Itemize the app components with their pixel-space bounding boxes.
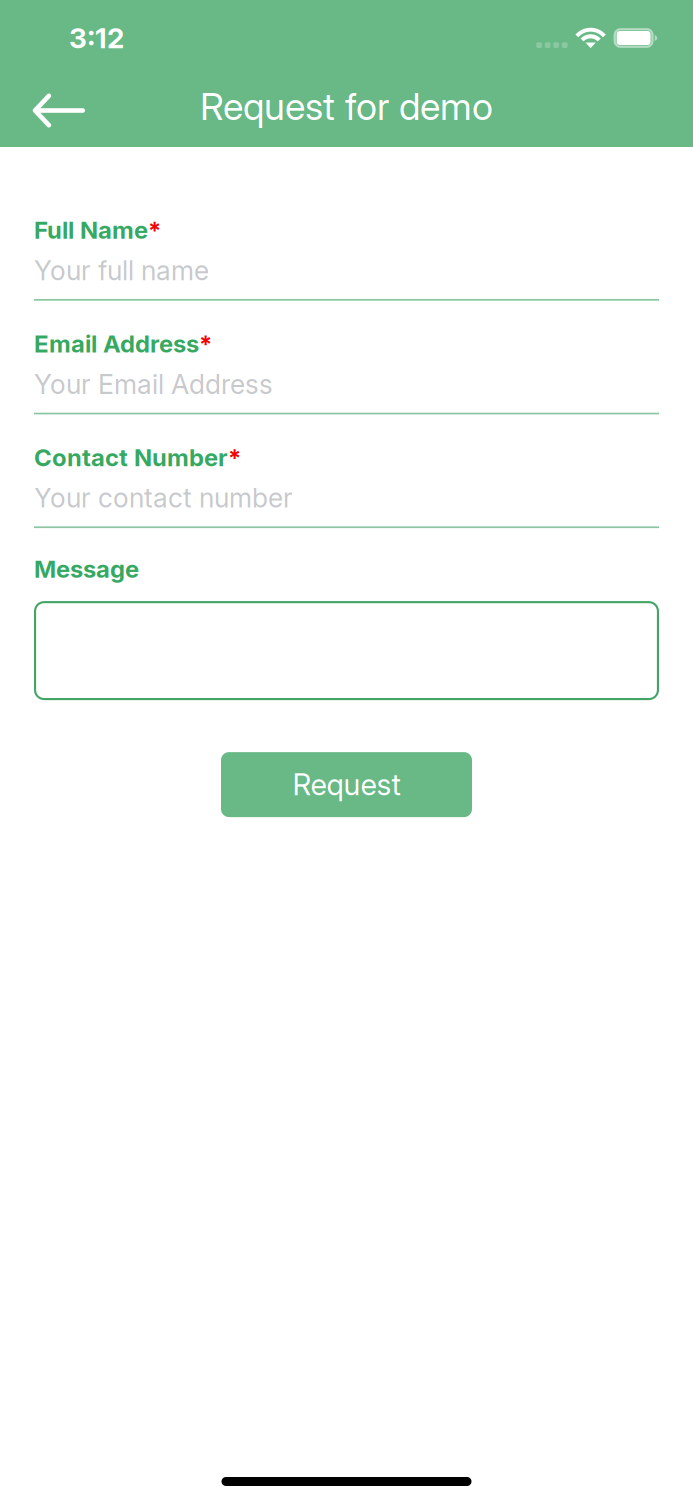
staticText: Your contact number [34, 482, 293, 514]
staticText: * [199, 329, 212, 358]
button[interactable]: Your contact number [34, 485, 659, 528]
button[interactable]: Your Email Address [34, 372, 659, 414]
staticText: * [148, 215, 161, 244]
staticText: Email Address [34, 329, 199, 358]
staticText: Message [34, 555, 139, 584]
button[interactable]: Request [221, 752, 472, 817]
staticText: Request [292, 767, 400, 802]
staticText: Contact Number [34, 443, 228, 472]
staticText: Your full name [34, 254, 209, 287]
button[interactable]: Message [34, 601, 659, 700]
button[interactable]: Back [0, 70, 101, 147]
staticText: Full Name [34, 215, 148, 244]
staticText: * [228, 443, 241, 472]
staticText: Your Email Address [34, 368, 273, 400]
button[interactable]: Your full name [34, 258, 659, 301]
staticText: 3:12 [69, 21, 124, 55]
staticText: Request for demo [200, 84, 493, 129]
